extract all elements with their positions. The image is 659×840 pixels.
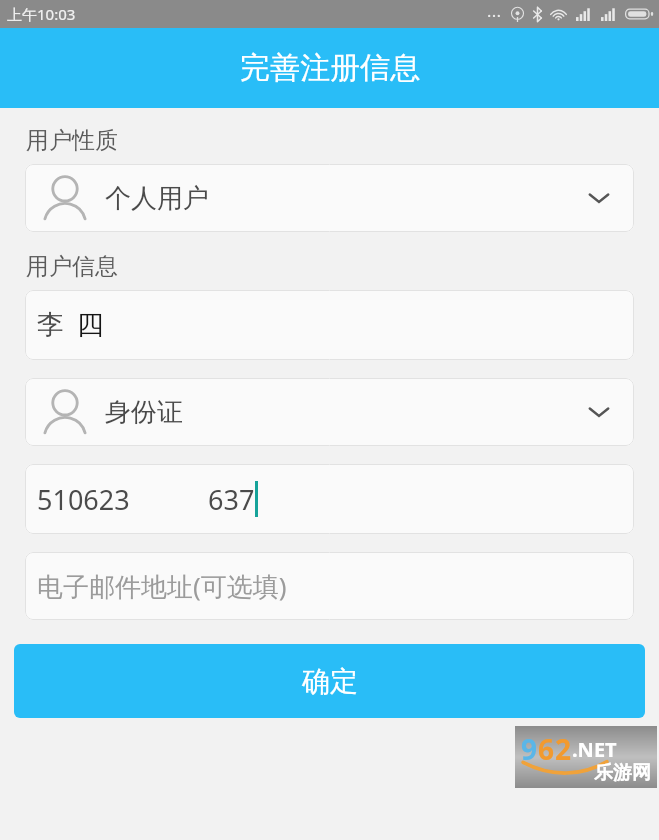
button[interactable]: 确定 — [14, 644, 645, 718]
staticText: 身份证 — [105, 396, 183, 429]
staticText: 完善注册信息 — [240, 49, 420, 87]
staticText: 乐游网 — [594, 761, 651, 785]
other: 展开 — [588, 191, 610, 205]
staticText: 确定 — [302, 664, 358, 699]
button[interactable]: 电子邮件地址(可选填) — [25, 552, 634, 620]
staticText: 电子邮件地址(可选填) — [37, 568, 287, 604]
staticText: .NET — [572, 736, 617, 763]
staticText: 510623 — [37, 481, 130, 518]
button[interactable]: 李 — [25, 290, 634, 360]
staticText: 四 — [77, 308, 104, 342]
staticText: 用户性质 — [26, 126, 118, 155]
button[interactable]: 证件类型 — [25, 378, 634, 446]
staticText: 637 — [208, 481, 255, 518]
button[interactable]: 510623 — [25, 464, 634, 534]
staticText: 9 — [521, 730, 538, 768]
staticText: 6 — [538, 730, 555, 768]
staticText: 上午10:03 — [7, 4, 76, 24]
staticText: 2 — [555, 730, 572, 768]
staticText: 李 — [37, 308, 64, 342]
staticText: 个人用户 — [105, 182, 209, 215]
button[interactable]: 用户性质 — [25, 164, 634, 232]
staticText: 用户信息 — [26, 252, 118, 281]
other: 展开 — [588, 405, 610, 419]
